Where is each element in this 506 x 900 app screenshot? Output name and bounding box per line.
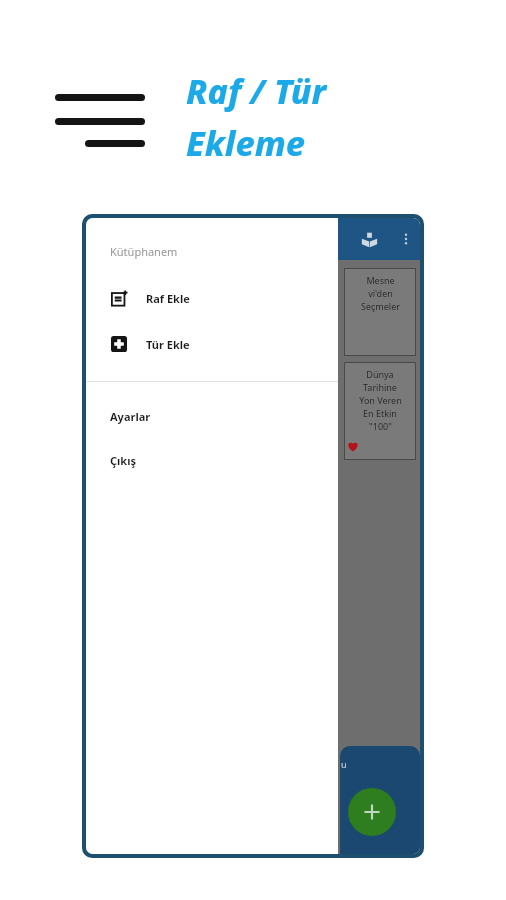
staticText: "100": [369, 420, 392, 432]
staticText: En Etkin: [363, 407, 397, 419]
staticText: Raf Ekle: [146, 291, 190, 306]
staticText: vi'den: [368, 287, 393, 299]
button[interactable]: Add: [348, 788, 396, 836]
button[interactable]: Raf Ekle: [86, 281, 338, 315]
staticText: Yon Veren: [359, 394, 402, 406]
staticText: Ayarlar: [110, 409, 151, 424]
staticText: Seçmeler: [361, 300, 400, 312]
staticText: Dünya: [366, 368, 394, 380]
staticText: Kütüphanem: [110, 244, 178, 259]
button[interactable]: Çıkış: [86, 448, 338, 472]
button[interactable]: Ayarlar: [86, 404, 338, 428]
button[interactable]: Mesne: [344, 268, 416, 356]
staticText: Raf / Tür: [186, 68, 327, 114]
button[interactable]: More options: [392, 225, 420, 253]
button[interactable]: Dünya: [344, 362, 416, 460]
button[interactable]: Tür Ekle: [86, 327, 338, 361]
staticText: Tür Ekle: [146, 337, 190, 352]
button[interactable]: Library: [354, 224, 384, 254]
staticText: Ekleme: [186, 120, 306, 166]
staticText: u: [341, 758, 347, 770]
staticText: Çıkış: [110, 453, 136, 468]
button[interactable]: Menu: [55, 78, 165, 148]
staticText: Tarihine: [363, 381, 397, 393]
staticText: Mesne: [366, 274, 395, 286]
